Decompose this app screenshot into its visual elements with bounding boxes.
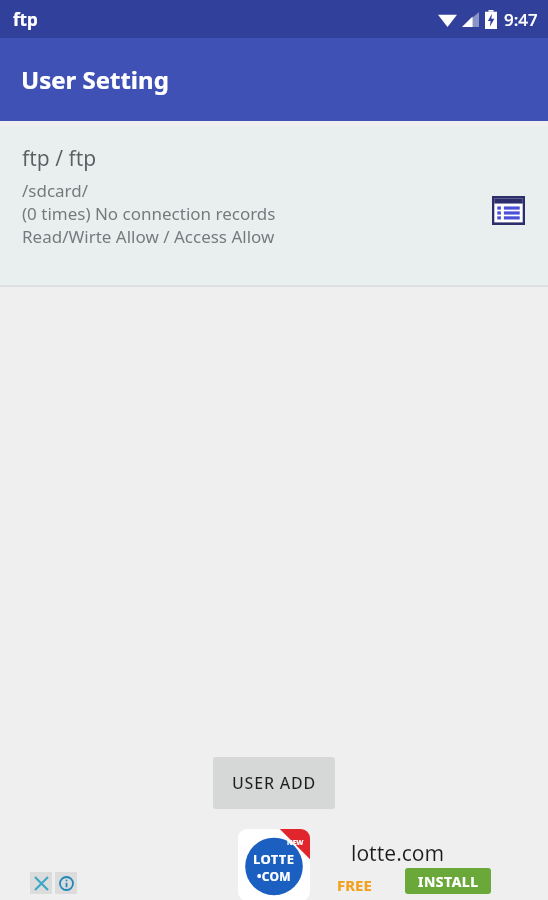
button[interactable]: Close ad (30, 872, 52, 894)
staticText: ftp / ftp (22, 144, 97, 173)
button[interactable]: USER ADD (213, 757, 335, 809)
staticText: (0 times) No connection records (22, 202, 276, 225)
staticText: Read/Wirte Allow / Access Allow (22, 225, 275, 248)
button[interactable]: ftp / ftp (0, 126, 548, 287)
staticText: NEW (287, 838, 304, 848)
staticText: /sdcard/ (22, 179, 89, 202)
staticText: FREE (337, 875, 372, 895)
staticText: INSTALL (418, 872, 479, 891)
staticText: 9:47 (504, 8, 538, 31)
staticText: ftp (13, 8, 38, 31)
button[interactable]: Connection log (488, 190, 528, 230)
staticText: USER ADD (232, 772, 317, 794)
button[interactable]: INSTALL (405, 868, 491, 894)
staticText: •COM (257, 868, 291, 884)
staticText: User Setting (21, 63, 169, 96)
button[interactable]: lotte.com app icon (238, 829, 310, 900)
staticText: LOTTE (253, 850, 295, 868)
staticText: lotte.com (351, 839, 445, 868)
button[interactable]: Ad information (55, 872, 77, 894)
